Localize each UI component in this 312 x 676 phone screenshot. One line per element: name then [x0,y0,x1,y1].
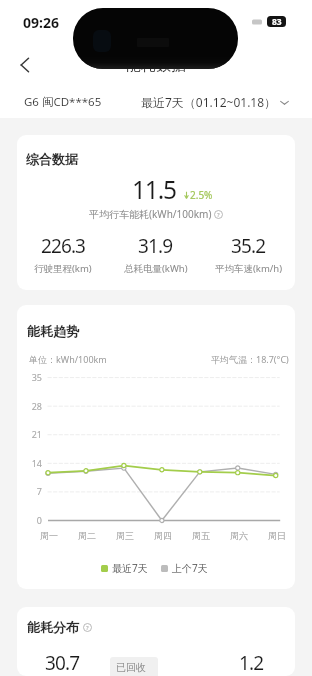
staticText: 14 [20,457,42,469]
staticText: 09:26 [23,13,59,32]
staticText: 周日 [263,530,291,541]
staticText: 35 [20,371,42,383]
button[interactable]: 上个7天 [161,561,208,575]
staticText: 最近7天（01.12~01.18） [141,94,277,110]
staticText: 综合数据 [26,151,78,167]
staticText: 周三 [111,530,139,541]
staticText: 7 [20,485,42,497]
staticText: 平均车速(km/h) [215,262,283,275]
staticText: 周五 [187,530,215,541]
staticText: 35.2 [231,233,266,259]
staticText: 28 [20,400,42,412]
staticText: 周二 [73,530,101,541]
staticText: 0 [20,514,42,526]
staticText: 83 [272,16,282,27]
button[interactable]: G6 闽CD***65 [24,94,102,110]
staticText: 226.3 [41,233,86,259]
button[interactable]: 已回收 [110,657,158,676]
staticText: 2.5% [190,188,213,202]
staticText: 周一 [35,530,63,541]
staticText: ? [217,211,220,219]
staticText: 能耗分布 [27,619,79,635]
staticText: 总耗电量(kWh) [124,262,188,275]
staticText: 平均行车能耗(kWh/100km) [89,207,212,221]
staticText: 30.7 [45,650,80,676]
button[interactable]: 最近7天（01.12~01.18） [141,94,290,110]
staticText: 能耗数据 [126,56,186,75]
button[interactable]: 最近7天 [101,561,148,575]
staticText: 能耗趋势 [27,323,79,339]
staticText: ? [86,624,89,632]
staticText: 31.9 [138,233,173,259]
staticText: 已回收 [116,661,146,674]
staticText: 21 [20,428,42,440]
button[interactable]: Back [9,49,41,81]
staticText: 11.5 [132,173,176,206]
staticText: 行驶里程(km) [34,262,92,275]
staticText: 平均气温：18.7(°C) [211,353,289,365]
staticText: 上个7天 [172,561,208,575]
staticText: 周四 [149,530,177,541]
staticText: 1.2 [239,650,264,676]
staticText: 最近7天 [112,561,148,575]
staticText: 单位：kWh/100km [29,353,107,365]
staticText: 周六 [225,530,253,541]
